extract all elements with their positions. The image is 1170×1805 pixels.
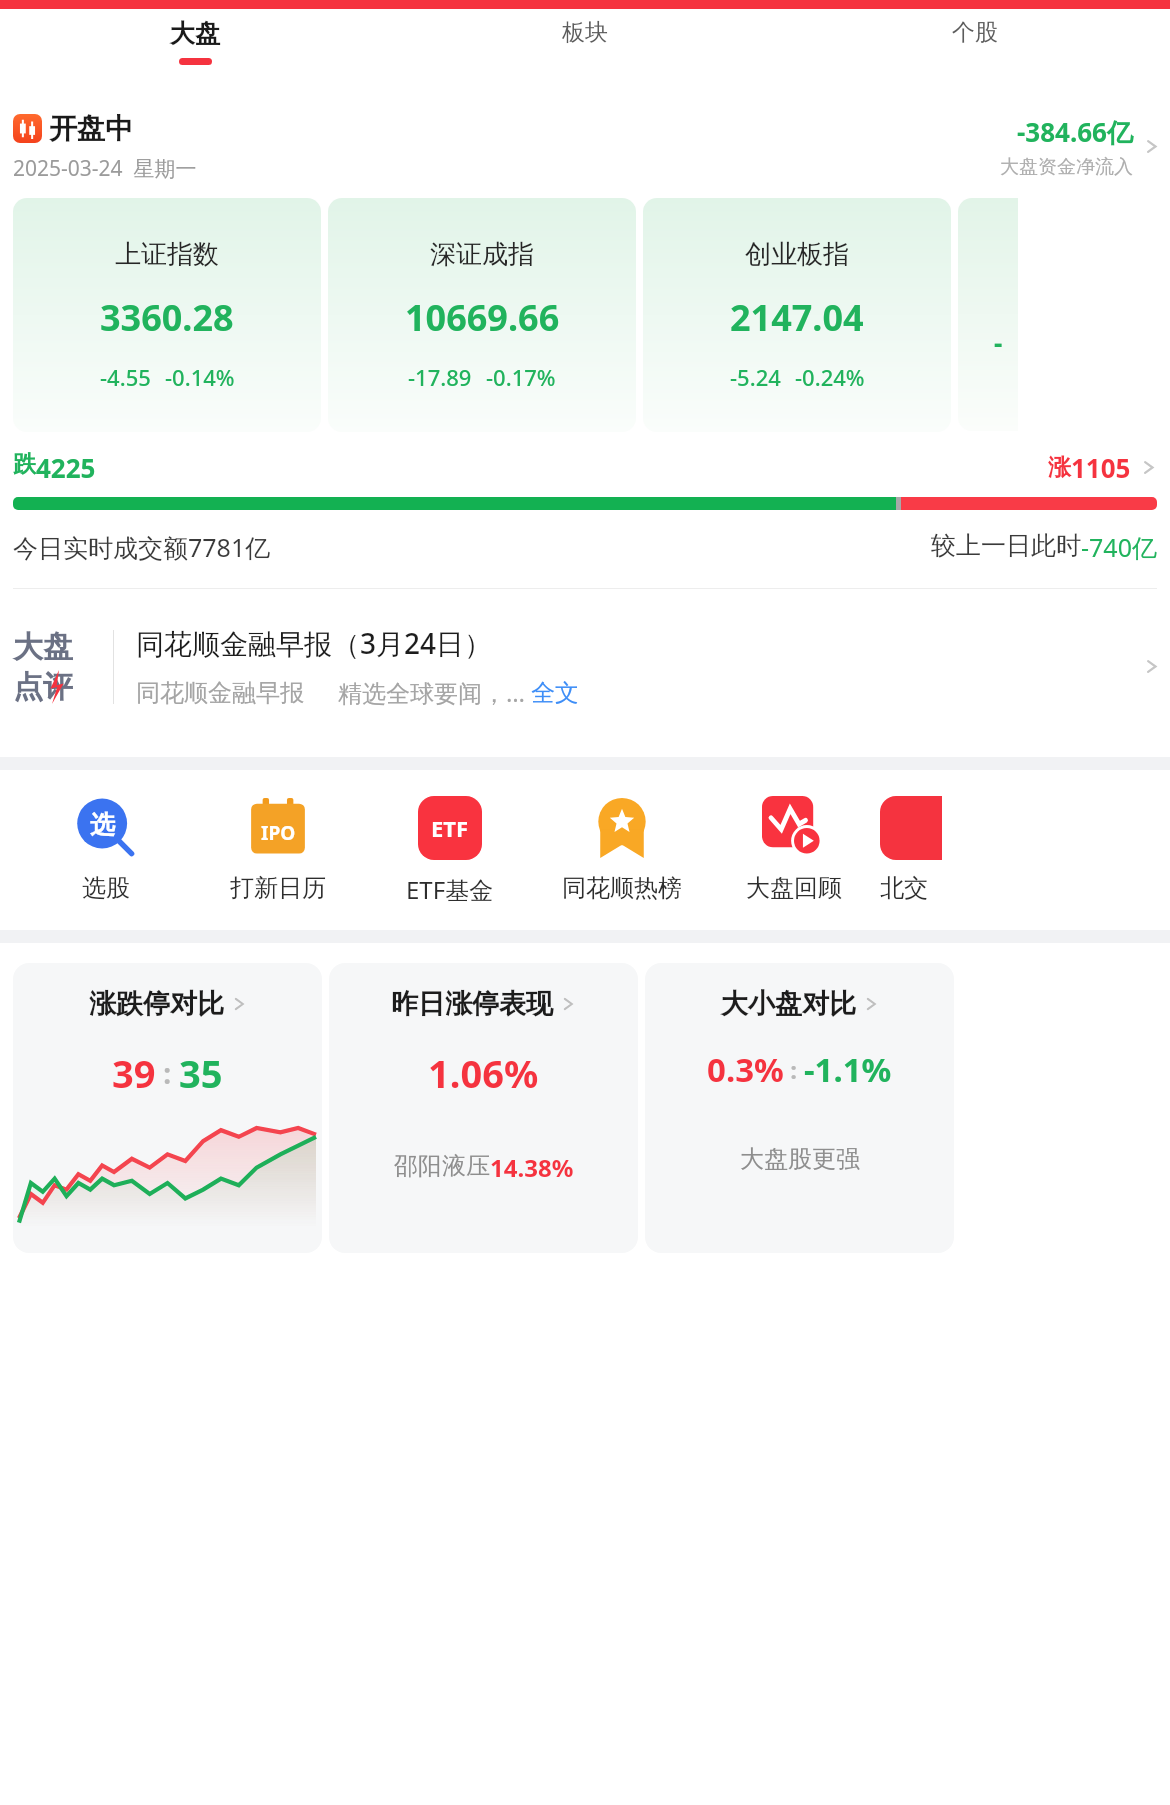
staticText: 涨跌停对比 — [89, 987, 224, 1021]
staticText: -384.66亿 — [1017, 114, 1133, 150]
staticText: ETF — [431, 813, 469, 843]
button[interactable]: 上证指数 — [13, 198, 321, 432]
staticText: 涨 — [1048, 453, 1071, 482]
staticText: 同花顺金融早报（3月24日） — [136, 624, 493, 662]
staticText: 大盘资金净流入 — [1000, 155, 1133, 179]
staticText: ETF基金 — [406, 873, 494, 906]
staticText: -0.17% — [486, 362, 556, 392]
staticText: 评 — [43, 668, 73, 706]
staticText: 2147.04 — [730, 293, 864, 342]
staticText: 开盘中 — [49, 111, 133, 146]
staticText: -17.89 — [408, 362, 472, 392]
staticText: 1105 — [1071, 450, 1131, 485]
staticText: 上证指数 — [115, 238, 219, 271]
staticText: -740亿 — [1081, 530, 1157, 564]
staticText: 跌 — [13, 450, 36, 479]
staticText: 1.06% — [428, 1047, 539, 1099]
staticText: 深证成指 — [430, 238, 534, 271]
staticText: -0.24% — [795, 362, 865, 392]
button[interactable]: 创业板指 — [643, 198, 951, 432]
staticText: 全文 — [531, 678, 579, 708]
staticText: 3360.28 — [100, 293, 234, 342]
button[interactable]: -384.66亿 — [1000, 110, 1160, 183]
button[interactable]: ETF — [364, 796, 536, 906]
staticText: 今日实时成交额7781亿 — [13, 530, 271, 564]
button[interactable]: IPO — [192, 796, 364, 903]
button[interactable]: 大小盘对比 — [645, 963, 954, 1253]
staticText: 大盘回顾 — [746, 873, 842, 903]
button[interactable]: - — [958, 198, 1018, 431]
staticText: 14.38% — [490, 1151, 574, 1184]
button[interactable]: 板块 — [390, 9, 780, 87]
staticText: 北交 — [880, 873, 928, 903]
staticText: 打新日历 — [230, 873, 326, 903]
staticText: 个股 — [952, 18, 998, 47]
button[interactable]: 深证成指 — [328, 198, 636, 432]
staticText: 选 — [90, 809, 115, 840]
staticText: 板块 — [562, 18, 608, 47]
staticText: 大小盘对比 — [721, 987, 856, 1021]
staticText: IPO — [261, 820, 296, 846]
staticText: 同花顺热榜 — [562, 873, 682, 903]
staticText: -4.55 — [100, 362, 151, 392]
staticText: - — [994, 325, 1003, 360]
staticText: 较上一日此时 — [931, 530, 1081, 561]
button[interactable]: 昨日涨停表现 — [329, 963, 638, 1253]
staticText: 昨日涨停表现 — [391, 987, 553, 1021]
staticText: 邵阳液压 — [394, 1151, 490, 1181]
staticText: 选股 — [82, 873, 130, 903]
button[interactable]: 个股 — [780, 9, 1170, 87]
staticText: -0.14% — [165, 362, 235, 392]
staticText: 2025-03-24 星期一 — [13, 154, 197, 183]
staticText: 35 — [179, 1047, 223, 1099]
button[interactable]: 大盘 — [0, 9, 390, 87]
staticText: 精选全球要闻，… — [338, 676, 525, 709]
staticText: 同花顺金融早报 — [136, 678, 304, 708]
staticText: 39 — [112, 1047, 156, 1099]
staticText: : — [784, 1053, 804, 1086]
button[interactable]: 选 — [20, 796, 192, 903]
staticText: 大盘股更强 — [740, 1144, 860, 1174]
button[interactable]: 大盘回顾 — [708, 796, 880, 903]
staticText: : — [156, 1054, 179, 1092]
staticText: 10669.66 — [405, 293, 560, 342]
button[interactable]: 大盘 — [0, 589, 1170, 744]
staticText: 大盘 — [170, 18, 220, 49]
button[interactable]: 涨跌停对比 — [13, 963, 322, 1253]
staticText: 4225 — [36, 450, 96, 485]
staticText: 点 — [13, 668, 43, 706]
staticText: 创业板指 — [745, 238, 849, 271]
button[interactable]: 跌 — [13, 450, 1157, 510]
button[interactable]: 同花顺热榜 — [536, 796, 708, 903]
staticText: 0.3% — [707, 1047, 784, 1092]
staticText: -5.24 — [730, 362, 781, 392]
staticText: -1.1% — [804, 1047, 892, 1092]
button[interactable]: 北交所 — [880, 796, 942, 903]
staticText: 大盘 — [13, 628, 73, 666]
